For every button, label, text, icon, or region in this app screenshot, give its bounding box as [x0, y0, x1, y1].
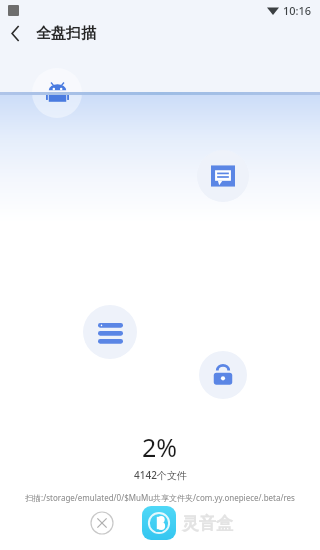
button[interactable]: Scanned item — [199, 351, 247, 399]
button[interactable]: Cancel scan — [86, 507, 118, 539]
staticText: 2% — [142, 430, 178, 464]
staticText: 扫描:/storage/emulated/0/$MuMu共享文件夹/com.yy… — [6, 492, 314, 503]
button[interactable]: Scanned item — [83, 305, 137, 359]
button[interactable]: Scanned item — [197, 150, 249, 202]
button[interactable]: Scanned item — [32, 68, 82, 118]
staticText: 灵音盒 — [182, 513, 233, 534]
staticText: 全盘扫描 — [36, 24, 96, 43]
staticText: 4142个文件 — [134, 468, 187, 482]
staticText: 10:16 — [283, 3, 312, 18]
button[interactable]: Back — [0, 20, 30, 46]
